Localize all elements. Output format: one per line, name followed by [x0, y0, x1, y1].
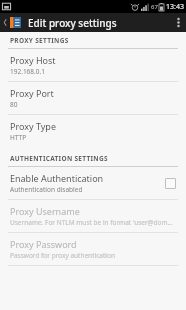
staticText: HTTP — [10, 133, 27, 142]
button[interactable]: Proxy Type — [0, 115, 186, 147]
staticText: Password for proxy authentication — [10, 251, 115, 260]
staticText: Enable Authentication — [10, 172, 104, 184]
staticText: Proxy Username — [10, 205, 80, 217]
button[interactable]: Proxy Username — [0, 200, 186, 232]
staticText: Proxy Port — [10, 87, 54, 99]
staticText: Proxy Type — [10, 120, 56, 132]
button[interactable]: More options — [170, 13, 186, 32]
staticText: Edit proxy settings — [28, 16, 170, 30]
staticText: Proxy Password — [10, 238, 77, 250]
staticText: 192.168.0.1 — [10, 67, 45, 76]
button[interactable]: Proxy Port — [0, 82, 186, 114]
staticText: Authentication disabled — [10, 185, 83, 194]
staticText: 13:43 — [166, 2, 184, 12]
button[interactable]: Proxy Password — [0, 233, 186, 265]
staticText: Proxy Host — [10, 54, 56, 66]
staticText: Username. For NTLM must be in format 'us… — [10, 218, 176, 227]
button[interactable]: Enable Authentication — [0, 167, 186, 199]
staticText: 67 — [151, 3, 158, 11]
button[interactable]: Proxy Host — [0, 49, 186, 81]
staticText: AUTHENTICATION SETTINGS — [10, 154, 108, 163]
staticText: 80 — [10, 100, 18, 109]
staticText: PROXY SETTINGS — [10, 36, 69, 45]
button[interactable]: Navigate up — [0, 13, 23, 32]
